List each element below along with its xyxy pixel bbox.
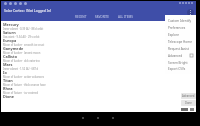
- button[interactable]: Preferences: [165, 24, 196, 31]
- staticText: Advanced: [182, 94, 195, 98]
- staticText: Custom Identify: [168, 19, 192, 23]
- button[interactable]: Ganymede: [3, 46, 196, 54]
- staticText: Export CSVs: [168, 67, 186, 71]
- staticText: Inner planet · 1.52 AU · 687 d: [3, 67, 39, 70]
- staticText: Explore: [168, 33, 179, 37]
- staticText: Callisto: [3, 54, 18, 59]
- staticText: Moon of Jupiter · smooth ice crust: [3, 43, 45, 46]
- staticText: Europa: [3, 38, 17, 43]
- button[interactable]: Telescope Home: [165, 38, 196, 45]
- staticText: Advanced: [168, 54, 183, 58]
- staticText: Moon of Jupiter · largest moon: [3, 51, 41, 54]
- staticText: Solar Cortex : (Not Logged In): [4, 8, 51, 13]
- staticText: Done: [185, 101, 192, 105]
- staticText: Request Assist: [168, 47, 189, 51]
- staticText: Inner planet · 0.39 AU · 88 d orbit: [3, 27, 44, 30]
- button[interactable]: Advanced: [165, 52, 196, 59]
- staticText: Ganymede: [3, 46, 24, 51]
- staticText: RECENT: [75, 15, 87, 19]
- staticText: Dione: [3, 94, 15, 99]
- button[interactable]: Mars: [3, 62, 196, 70]
- staticText: Io: [3, 70, 7, 75]
- staticText: Telescope Home: [168, 40, 192, 44]
- button[interactable]: RECENT: [75, 15, 87, 19]
- staticText: Moon of Jupiter · old cratering: [3, 59, 40, 62]
- staticText: Saturn: [3, 30, 16, 35]
- button[interactable]: Io: [3, 70, 196, 78]
- button[interactable]: Titan: [3, 78, 196, 86]
- staticText: Moon of Jupiter · active volcanoes: [3, 75, 44, 78]
- button[interactable]: Request Assist: [165, 45, 196, 52]
- staticText: Screen Bright: [168, 61, 188, 65]
- button[interactable]: FAVORITE: [95, 15, 110, 19]
- button[interactable]: ALL ITEMS: [118, 15, 134, 19]
- staticText: Preferences: [168, 26, 186, 30]
- staticText: Mars: [3, 62, 13, 67]
- button[interactable]: Recents: [110, 115, 115, 120]
- staticText: Moon of Saturn · thick orange haze: [3, 83, 46, 86]
- button[interactable]: Zoom controls: [181, 107, 196, 112]
- button[interactable]: Europa: [3, 38, 196, 46]
- button[interactable]: Advanced: [181, 93, 196, 99]
- button[interactable]: Saturn: [3, 30, 196, 38]
- staticText: Gas giant · 9.54 AU · 29 y orbit: [3, 35, 40, 38]
- button[interactable]: Back: [80, 115, 85, 120]
- button[interactable]: Done: [181, 100, 196, 106]
- button[interactable]: Screen Bright: [165, 59, 196, 66]
- button[interactable]: Explore: [165, 31, 196, 38]
- staticText: ALL ITEMS: [118, 15, 134, 19]
- button[interactable]: Export CSVs: [165, 66, 196, 72]
- staticText: Mercury: [3, 22, 19, 27]
- staticText: Titan: [3, 78, 13, 83]
- staticText: Rhea: [3, 86, 13, 91]
- staticText: FAVORITE: [95, 15, 110, 19]
- staticText: Moon of Saturn · icy cratered: [3, 91, 39, 94]
- button[interactable]: More options: [187, 9, 194, 16]
- button[interactable]: Rhea: [3, 86, 196, 94]
- button[interactable]: Mercury: [3, 22, 196, 30]
- button[interactable]: Dione: [3, 94, 196, 102]
- button[interactable]: Custom Identify: [165, 17, 196, 24]
- button[interactable]: Callisto: [3, 54, 196, 62]
- button[interactable]: Home: [95, 115, 100, 120]
